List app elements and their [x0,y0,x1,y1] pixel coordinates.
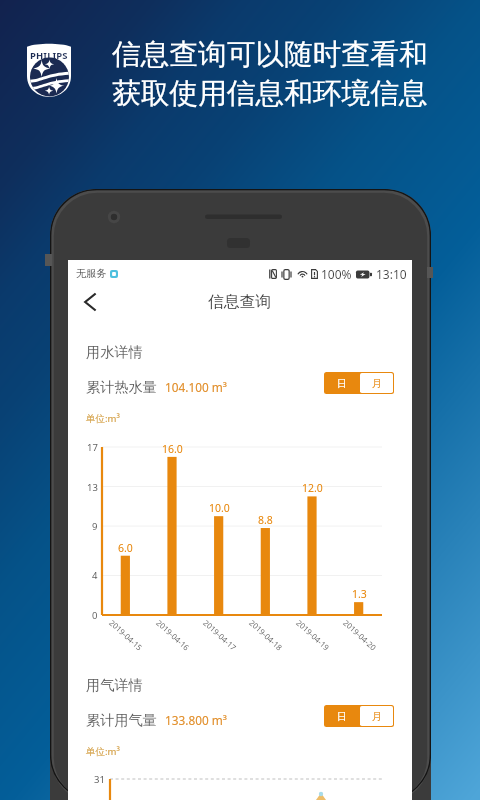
staticText: 单位:m³ [86,412,120,425]
button[interactable]: 日 [324,372,394,394]
staticText: 累计热水量 [86,378,157,396]
staticText: 信息查询可以随时查看和 [112,36,428,72]
staticText: 8.8 [258,513,273,527]
staticText: 日 [337,710,347,723]
staticText: 2019-04-19 [294,618,331,653]
staticText: 9 [92,520,98,533]
staticText: 6.0 [118,541,133,555]
staticText: 2019-04-16 [154,618,191,653]
button[interactable]: Back [71,284,109,320]
staticText: 12.0 [302,481,323,495]
staticText: 31 [94,773,105,786]
staticText: 2019-04-18 [247,618,284,653]
staticText: 日 [337,377,347,390]
staticText: 无服务 [76,267,107,280]
staticText: 获取使用信息和环境信息 [112,75,428,111]
staticText: 104.100 m³ [165,379,227,395]
staticText: 17 [87,441,98,454]
staticText: 100% [321,266,352,282]
staticText: 用水详情 [86,343,143,361]
staticText: 10.0 [209,501,230,515]
staticText: 月 [372,710,382,723]
staticText: 月 [372,377,382,390]
staticText: 2019-04-15 [107,618,144,653]
staticText: 2019-04-17 [201,618,238,653]
staticText: 0 [92,609,98,622]
staticText: PHILIPS [30,49,68,62]
staticText: 4 [92,569,98,582]
staticText: 1.3 [352,587,367,601]
staticText: 单位:m³ [86,745,120,758]
staticText: 信息查询 [208,292,272,312]
staticText: 用气详情 [86,676,143,694]
staticText: 16.0 [162,442,183,456]
button[interactable]: 日 [324,705,394,727]
staticText: 133.800 m³ [165,712,227,728]
staticText: 2019-04-20 [341,618,378,653]
staticText: 13 [87,481,98,494]
staticText: 累计用气量 [86,711,157,729]
staticText: 13:10 [376,266,407,282]
